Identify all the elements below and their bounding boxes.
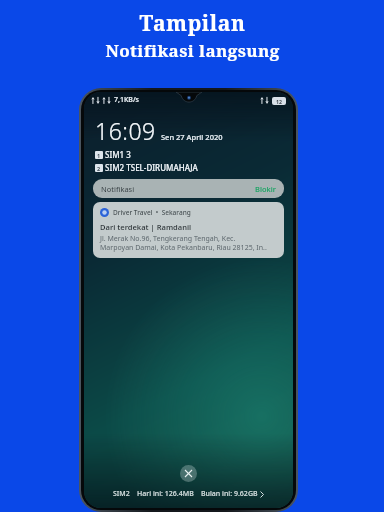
button[interactable]: SIM2 xyxy=(84,489,293,508)
staticText: Notifikasi langsung xyxy=(105,39,280,62)
button[interactable]: Close xyxy=(180,465,197,482)
staticText: Bulan ini: 9.62GB xyxy=(201,489,258,499)
staticText: 16:09 xyxy=(95,115,156,146)
staticText: Driver Travel • Sekarang xyxy=(113,208,191,217)
button[interactable]: Notifikasi xyxy=(93,179,284,198)
staticText: Hari ini: 126.4MB xyxy=(137,489,194,499)
staticText: 12 xyxy=(276,98,282,105)
staticText: 2 xyxy=(97,165,101,172)
staticText: Dari terdekat | Ramdanil xyxy=(100,222,192,232)
staticText: Tampilan xyxy=(139,9,246,38)
staticText: Blokir xyxy=(255,184,276,194)
staticText: SIM1 3 xyxy=(105,149,131,160)
staticText: 7,1KB/s xyxy=(114,95,140,105)
staticText: SIM2 TSEL-DIRUMAHAJA xyxy=(105,162,198,173)
staticText: SIM2 xyxy=(113,489,130,499)
staticText: Jl. Merak No.96, Tengkerang Tengah, Kec.… xyxy=(100,234,267,252)
staticText: Sen 27 April 2020 xyxy=(161,132,223,142)
staticText: 1 xyxy=(97,152,101,159)
staticText: Notifikasi xyxy=(101,184,135,194)
button[interactable]: Driver Travel • Sekarang xyxy=(93,202,284,258)
